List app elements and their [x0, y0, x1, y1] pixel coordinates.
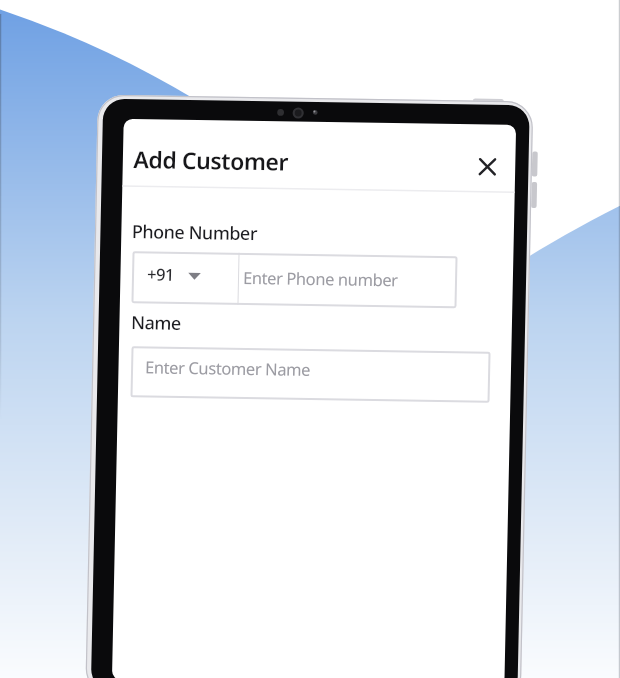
staticText: Phone Number: [119, 158, 269, 308]
staticText: Enter Customer Name: [134, 274, 321, 461]
button[interactable]: +91: [106, 199, 264, 357]
staticText: Enter Phone number: [232, 190, 409, 367]
button[interactable]: Enter Customer Name: [105, 169, 515, 579]
button[interactable]: Enter Phone number: [213, 146, 483, 416]
staticText: Add Customer: [118, 67, 304, 253]
button[interactable]: [463, 143, 511, 191]
staticText: +91: [136, 249, 185, 298]
staticText: Name: [118, 285, 193, 360]
